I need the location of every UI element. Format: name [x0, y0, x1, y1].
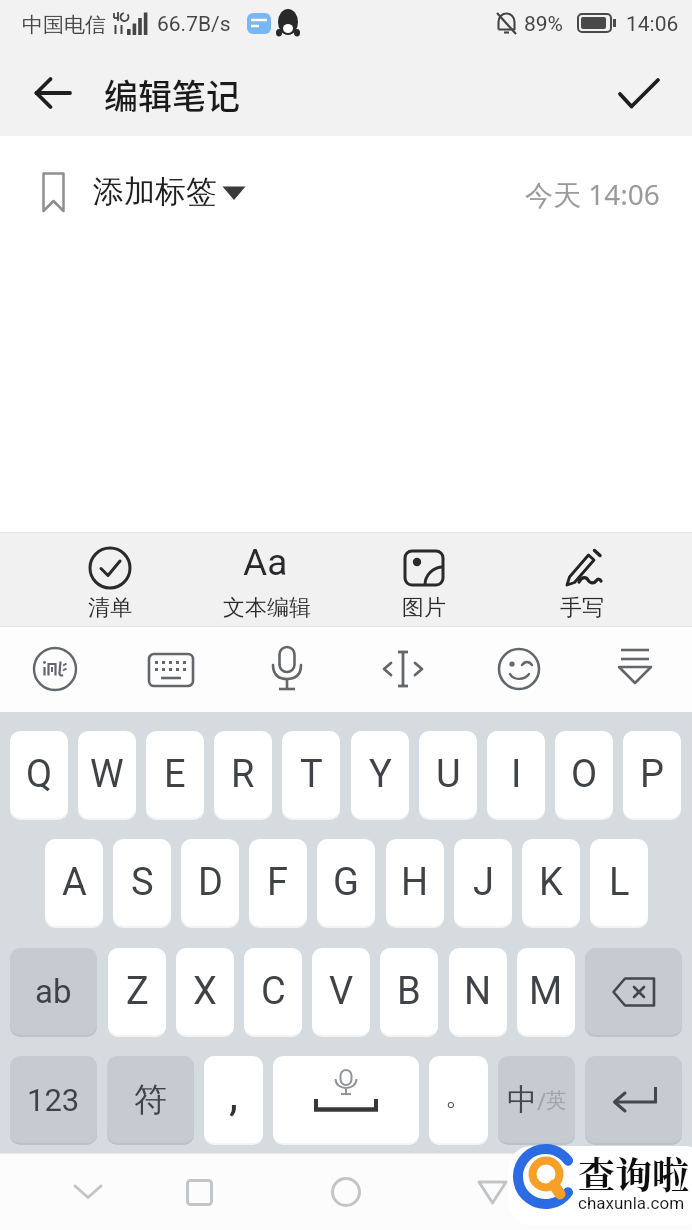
staticText: Z — [126, 969, 149, 1014]
staticText: 14:06 — [626, 12, 679, 37]
button[interactable]: Z — [108, 948, 166, 1035]
button[interactable]: 。 — [429, 1056, 488, 1143]
button[interactable]: D — [181, 839, 239, 926]
staticText: 中 — [507, 1081, 537, 1119]
button[interactable]: 123 — [10, 1056, 97, 1143]
staticText: V — [329, 969, 354, 1014]
staticText: S — [131, 860, 154, 905]
button[interactable]: H — [386, 839, 444, 926]
staticText: I — [511, 752, 522, 797]
staticText: 图片 — [402, 594, 446, 622]
button[interactable]: V — [312, 948, 370, 1035]
button[interactable] — [22, 636, 88, 702]
button[interactable]: C — [244, 948, 302, 1035]
staticText: ab — [35, 972, 72, 1011]
staticText: O — [571, 752, 598, 797]
button[interactable]: T — [282, 731, 340, 818]
staticText: 中国电信 — [22, 12, 106, 38]
button[interactable] — [452, 1160, 532, 1224]
button[interactable] — [254, 636, 320, 702]
staticText: Aa — [243, 541, 288, 584]
button[interactable]: 手写 — [523, 538, 641, 622]
staticText: 123 — [27, 1082, 80, 1118]
button[interactable]: W — [78, 731, 136, 818]
staticText: B — [397, 969, 421, 1014]
staticText: F — [267, 860, 289, 905]
button[interactable]: 文本编辑 — [208, 538, 326, 622]
button[interactable] — [160, 1160, 240, 1224]
button[interactable] — [370, 636, 436, 702]
button[interactable] — [486, 636, 552, 702]
staticText: L — [609, 860, 630, 905]
button[interactable]: 清单 — [51, 538, 169, 622]
staticText: A — [62, 860, 87, 905]
staticText: T — [300, 752, 323, 797]
button[interactable]: E — [146, 731, 204, 818]
staticText: N — [464, 969, 492, 1014]
button[interactable] — [273, 1056, 419, 1143]
button[interactable] — [306, 1160, 386, 1224]
staticText: J — [473, 860, 494, 905]
button[interactable] — [48, 1160, 128, 1224]
button[interactable]: I — [487, 731, 545, 818]
button[interactable]: P — [623, 731, 681, 818]
button[interactable] — [585, 1056, 682, 1143]
staticText: X — [193, 969, 217, 1014]
staticText: M — [529, 969, 563, 1014]
staticText: Q — [26, 752, 53, 797]
button[interactable]: 图片 — [365, 538, 483, 622]
staticText: 今天 14:06 — [525, 175, 660, 213]
staticText: 符 — [134, 1079, 167, 1121]
button[interactable]: L — [590, 839, 648, 926]
button[interactable]: M — [517, 948, 575, 1035]
staticText: E — [164, 752, 186, 797]
button[interactable]: G — [317, 839, 375, 926]
button[interactable]: K — [522, 839, 580, 926]
staticText: H — [401, 860, 429, 905]
button[interactable]: X — [176, 948, 234, 1035]
button[interactable]: , — [204, 1056, 263, 1143]
staticText: 英 — [546, 1088, 566, 1113]
staticText: 清单 — [88, 594, 132, 622]
button[interactable] — [585, 948, 682, 1035]
staticText: chaxunla.com — [578, 1193, 685, 1213]
staticText: 添加标签 — [93, 172, 217, 211]
staticText: 手写 — [560, 594, 604, 622]
button[interactable]: Y — [351, 731, 409, 818]
staticText: K — [539, 860, 563, 905]
staticText: W — [90, 752, 124, 797]
button[interactable] — [24, 68, 82, 118]
button[interactable]: 中 — [498, 1056, 575, 1143]
staticText: 66.7B/s — [157, 12, 231, 37]
staticText: 89% — [524, 12, 563, 37]
button[interactable]: 符 — [107, 1056, 194, 1143]
staticText: , — [229, 1067, 239, 1121]
button[interactable]: B — [380, 948, 438, 1035]
staticText: 查询啦 — [578, 1146, 689, 1199]
button[interactable]: U — [419, 731, 477, 818]
button[interactable]: ab — [10, 948, 97, 1035]
staticText: 文本编辑 — [223, 594, 311, 622]
staticText: U — [436, 752, 461, 797]
staticText: / — [537, 1084, 546, 1117]
staticText: Y — [369, 752, 392, 797]
button[interactable]: O — [555, 731, 613, 818]
staticText: C — [261, 969, 286, 1014]
button[interactable]: F — [249, 839, 307, 926]
button[interactable]: Q — [10, 731, 68, 818]
staticText: P — [640, 752, 664, 797]
button[interactable] — [606, 66, 672, 120]
staticText: 。 — [445, 1078, 473, 1113]
button[interactable]: N — [449, 948, 507, 1035]
button[interactable] — [602, 636, 668, 702]
button[interactable]: R — [214, 731, 272, 818]
staticText: R — [231, 752, 255, 797]
staticText: G — [333, 860, 359, 905]
button[interactable]: S — [113, 839, 171, 926]
staticText: D — [198, 860, 223, 905]
button[interactable]: J — [454, 839, 512, 926]
button[interactable]: A — [45, 839, 103, 926]
staticText: 编辑笔记 — [104, 70, 240, 119]
button[interactable] — [30, 160, 260, 224]
button[interactable] — [138, 636, 204, 702]
